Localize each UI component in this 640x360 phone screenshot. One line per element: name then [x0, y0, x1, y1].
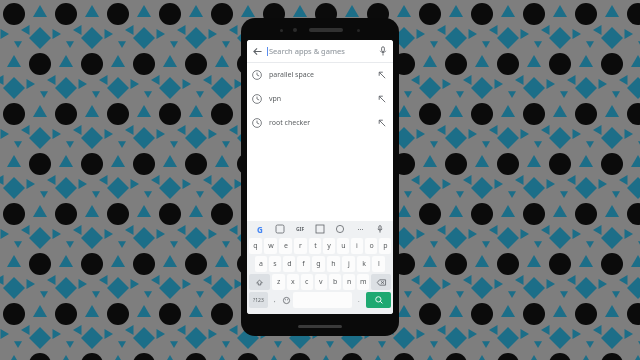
button[interactable]: Search: [366, 292, 391, 308]
button[interactable]: c: [301, 274, 313, 290]
staticText: m: [360, 277, 367, 287]
staticText: b: [333, 277, 338, 287]
staticText: p: [383, 241, 388, 251]
staticText: parallel space: [269, 70, 314, 80]
button[interactable]: l: [372, 256, 385, 272]
button[interactable]: Stickers: [273, 222, 287, 236]
staticText: y: [327, 241, 331, 251]
staticText: h: [331, 259, 336, 269]
button[interactable]: j: [342, 256, 355, 272]
button[interactable]: Insert parallel space: [376, 69, 388, 81]
staticText: u: [341, 241, 346, 251]
staticText: z: [277, 277, 281, 287]
button[interactable]: x: [287, 274, 299, 290]
button[interactable]: t: [309, 238, 321, 254]
staticText: v: [319, 277, 323, 287]
button[interactable]: g: [312, 256, 325, 272]
button[interactable]: Shift: [249, 274, 270, 290]
button[interactable]: parallel space: [247, 63, 393, 87]
staticText: s: [273, 259, 277, 269]
button[interactable]: Backspace: [371, 274, 391, 290]
button[interactable]: root checker: [247, 111, 393, 135]
button[interactable]: Insert vpn: [376, 93, 388, 105]
button[interactable]: h: [327, 256, 340, 272]
button[interactable]: GIF: [293, 222, 307, 236]
button[interactable]: e: [279, 238, 292, 254]
button[interactable]: Translate: [313, 222, 327, 236]
staticText: G: [257, 224, 263, 235]
staticText: x: [291, 277, 295, 287]
button[interactable]: u: [337, 238, 349, 254]
button[interactable]: v: [315, 274, 327, 290]
button[interactable]: Emoji: [280, 291, 292, 309]
button[interactable]: r: [294, 238, 307, 254]
button[interactable]: a: [255, 256, 267, 272]
staticText: GIF: [296, 226, 305, 233]
staticText: o: [369, 241, 374, 251]
button[interactable]: y: [323, 238, 335, 254]
button[interactable]: i: [351, 238, 363, 254]
staticText: w: [268, 241, 274, 251]
button[interactable]: Comma: [269, 291, 280, 309]
button[interactable]: f: [297, 256, 310, 272]
staticText: a: [259, 259, 263, 269]
button[interactable]: d: [283, 256, 295, 272]
staticText: j: [348, 259, 350, 269]
button[interactable]: o: [365, 238, 377, 254]
staticText: q: [253, 241, 258, 251]
button[interactable]: n: [343, 274, 355, 290]
staticText: n: [347, 277, 352, 287]
staticText: l: [378, 259, 380, 269]
button[interactable]: z: [272, 274, 285, 290]
staticText: i: [356, 241, 358, 251]
button[interactable]: Google: [253, 222, 267, 236]
staticText: d: [287, 259, 292, 269]
button[interactable]: Period: [353, 291, 365, 309]
staticText: r: [299, 241, 302, 251]
staticText: c: [305, 277, 309, 287]
staticText: Search apps & games: [269, 46, 345, 56]
staticText: ,: [274, 296, 276, 304]
staticText: g: [316, 259, 321, 269]
button[interactable]: Back: [247, 41, 267, 61]
staticText: t: [314, 241, 317, 251]
button[interactable]: ?123: [249, 292, 268, 308]
staticText: ?123: [253, 297, 264, 304]
button[interactable]: q: [249, 238, 262, 254]
button[interactable]: Insert root checker: [376, 117, 388, 129]
staticText: f: [302, 259, 305, 269]
staticText: .: [358, 296, 360, 304]
staticText: root checker: [269, 118, 311, 128]
button[interactable]: p: [379, 238, 391, 254]
staticText: e: [284, 241, 288, 251]
button[interactable]: m: [357, 274, 369, 290]
button[interactable]: b: [329, 274, 341, 290]
button[interactable]: w: [264, 238, 277, 254]
button[interactable]: s: [269, 256, 281, 272]
staticText: k: [362, 259, 366, 269]
button[interactable]: More: [353, 222, 367, 236]
button[interactable]: Voice input: [373, 222, 387, 236]
button[interactable]: vpn: [247, 87, 393, 111]
staticText: vpn: [269, 94, 282, 104]
button[interactable]: Voice search: [373, 41, 393, 61]
button[interactable]: k: [357, 256, 370, 272]
button[interactable]: Emoji: [333, 222, 347, 236]
